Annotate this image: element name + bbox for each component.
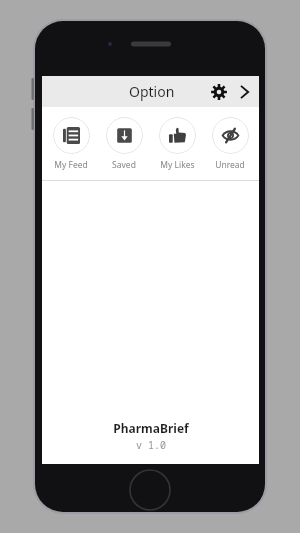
staticText: Saved: [112, 159, 136, 171]
button[interactable]: My Likes: [153, 117, 201, 171]
button[interactable]: Unread: [206, 117, 254, 171]
button[interactable]: Settings: [205, 78, 233, 106]
staticText: My Feed: [54, 159, 88, 171]
staticText: My Likes: [160, 159, 195, 171]
staticText: PharmaBrief: [113, 420, 189, 436]
button[interactable]: Saved: [100, 117, 148, 171]
staticText: Unread: [215, 159, 245, 171]
button[interactable]: My Feed: [47, 117, 95, 171]
staticText: Option: [129, 82, 175, 101]
button[interactable]: Next: [230, 78, 258, 106]
staticText: v 1.0: [136, 438, 166, 452]
